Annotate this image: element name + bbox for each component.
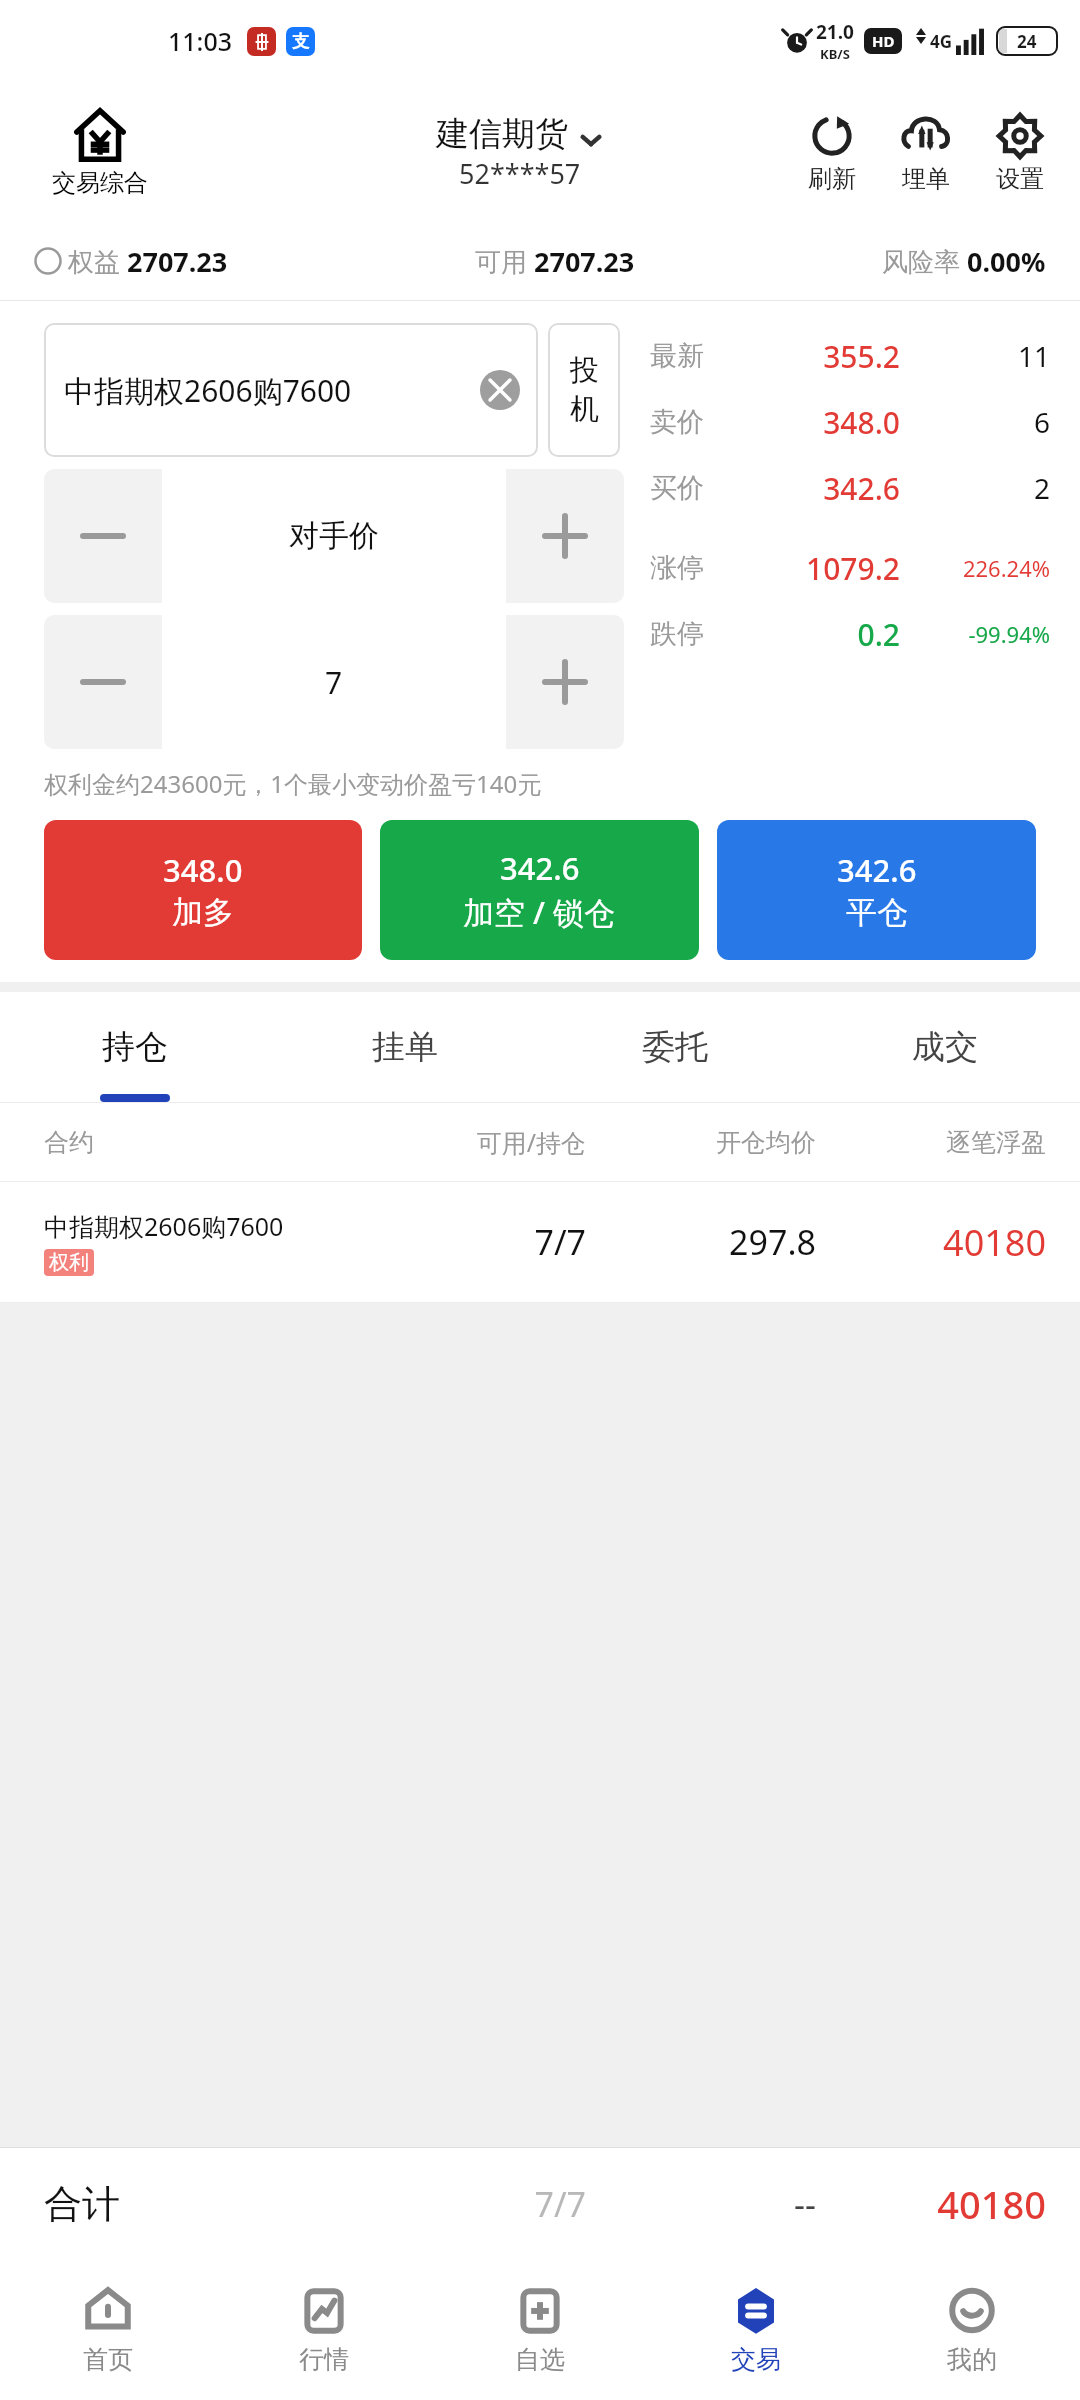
button[interactable]: 中指期权2606购7600 [44,323,538,457]
staticText: 4G [930,30,953,53]
staticText: 2707.23 [534,243,635,280]
staticText: 投 机 [570,352,599,428]
button[interactable]: 342.6 [717,820,1036,960]
staticText: 348.0 [730,402,900,443]
button[interactable]: 我的 [864,2260,1080,2400]
staticText: 342.6 [837,849,917,891]
staticText: 2707.23 [127,243,228,280]
button[interactable]: 7 [162,615,506,749]
button[interactable]: 交易综合 [52,106,148,198]
staticText: 跌停 [650,617,704,651]
staticText: HD [872,31,895,51]
button[interactable]: 建信期货 [436,113,604,192]
staticText: 40180 [816,1218,1046,1267]
staticText: 加空 / 锁仓 [463,891,616,933]
staticText: 合约 [44,1127,356,1158]
staticText: 中指期权2606购7600 [64,370,352,411]
staticText: 逐笔浮盈 [816,1127,1046,1158]
staticText: 挂单 [372,1026,438,1068]
button[interactable]: 减少 [44,469,162,603]
staticText: 52****57 [459,155,581,192]
staticText: 0.00% [967,243,1046,280]
staticText: 348.0 [163,849,243,891]
button[interactable]: 342.6 [380,820,699,960]
staticText: 最新 [650,339,704,373]
staticText: KB/S [820,45,850,63]
staticText: 0.2 [730,614,900,655]
staticText: 对手价 [289,517,379,555]
button[interactable]: 自选 [432,2260,648,2400]
staticText: 支 [292,31,309,52]
button[interactable]: 设置 [994,110,1046,194]
staticText: 行情 [299,2344,349,2375]
staticText: 交易综合 [52,168,148,198]
staticText: 买价 [650,471,704,505]
button[interactable]: 投 机 [548,323,620,457]
staticText: -99.94% [900,619,1050,649]
staticText: 11 [900,337,1050,375]
button[interactable]: 增加 [506,615,624,749]
staticText: 开仓均价 [586,1127,816,1158]
staticText: 持仓 [102,1026,168,1068]
staticText: 委托 [642,1026,708,1068]
staticText: 中指期权2606购7600 [44,1209,284,1243]
staticText: -- [586,2181,816,2227]
staticText: 建信期货 [436,113,568,155]
staticText: 297.8 [586,1219,816,1265]
button[interactable]: 埋单 [900,110,952,194]
staticText: 权益 [68,243,127,279]
staticText: 40180 [816,2178,1046,2230]
staticText: 成交 [912,1026,978,1068]
staticText: 可用/持仓 [356,1125,586,1159]
staticText: 226.24% [900,553,1050,583]
staticText: 2 [900,469,1050,507]
button[interactable]: 348.0 [44,820,362,960]
staticText: 埋单 [902,164,950,194]
staticText: 交易 [731,2344,781,2375]
staticText: 涨停 [650,551,704,585]
staticText: 风险率 [882,243,967,279]
staticText: 合计 [44,2180,356,2228]
staticText: 6 [900,403,1050,441]
button[interactable]: 成交 [810,992,1080,1102]
button[interactable]: 刷新 [806,110,858,194]
staticText: 7/7 [356,1219,586,1265]
staticText: 24 [1017,30,1037,53]
staticText: 11:03 [168,24,233,58]
button[interactable]: 减少 [44,615,162,749]
staticText: 1079.2 [730,548,900,589]
staticText: 加多 [172,893,234,932]
staticText: 平仓 [846,893,908,932]
staticText: 自选 [515,2344,565,2375]
staticText: 设置 [996,164,1044,194]
staticText: 卖价 [650,405,704,439]
button[interactable]: 持仓 [0,992,270,1102]
staticText: 首页 [83,2344,133,2375]
button[interactable]: 清除 [480,370,520,410]
button[interactable]: 对手价 [162,469,506,603]
button[interactable]: 增加 [506,469,624,603]
button[interactable]: 首页 [0,2260,216,2400]
staticText: 刷新 [808,164,856,194]
button[interactable]: 行情 [216,2260,432,2400]
staticText: 21.0 [816,19,854,45]
button[interactable]: 中指期权2606购7600 [0,1182,1080,1302]
button[interactable]: 交易 [648,2260,864,2400]
staticText: 我的 [947,2344,997,2375]
button[interactable]: 挂单 [270,992,540,1102]
staticText: 342.6 [730,468,900,509]
staticText: 权利 [49,1250,89,1275]
staticText: 可用 [475,243,534,279]
button[interactable]: 委托 [540,992,810,1102]
staticText: 342.6 [500,847,580,889]
staticText: 355.2 [730,336,900,377]
staticText: 7/7 [356,2181,586,2227]
staticText: 权利金约243600元，1个最小变动价盈亏140元 [44,767,542,800]
staticText: 7 [325,662,343,703]
